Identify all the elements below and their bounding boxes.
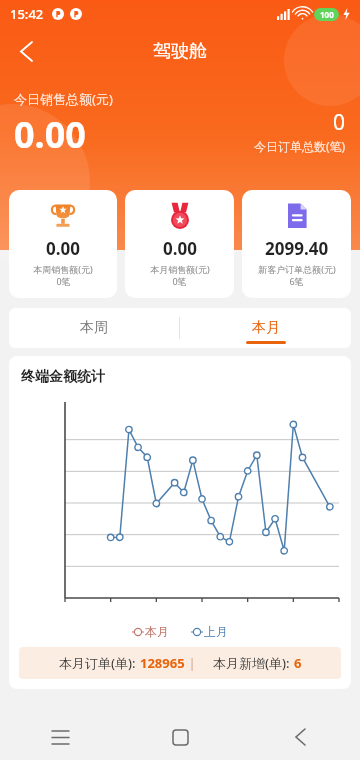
staticText: 本月订单(单): <box>59 654 140 672</box>
staticText: 0 <box>333 108 346 137</box>
staticText: 0笔 <box>56 275 71 287</box>
button[interactable]: 本周 <box>9 308 179 348</box>
button[interactable]: 本月 <box>180 308 351 348</box>
staticText: 0.00 <box>46 237 80 260</box>
staticText: 新客户订单总额(元) <box>258 263 336 275</box>
staticText: 6 <box>294 654 302 672</box>
staticText: 今日订单总数(笔) <box>254 138 346 154</box>
staticText: 终端金额统计 <box>21 368 105 386</box>
staticText: 本月新增(单): <box>213 654 294 672</box>
button[interactable]: Back <box>240 714 360 760</box>
button[interactable]: Recent apps <box>0 714 120 760</box>
staticText: 今日销售总额(元) <box>14 90 113 108</box>
button[interactable]: 0.00 <box>125 190 234 298</box>
staticText: 0笔 <box>172 275 187 287</box>
staticText: 本月销售额(元) <box>150 263 210 275</box>
staticText: 100 <box>320 9 334 20</box>
staticText: 128965 <box>140 654 185 672</box>
staticText: | <box>185 654 199 672</box>
staticText: 驾驶舱 <box>153 40 207 63</box>
staticText: 本周 <box>80 319 108 337</box>
staticText: 本月 <box>252 319 280 337</box>
staticText: 0.00 <box>163 237 197 260</box>
button[interactable]: Home <box>120 714 240 760</box>
staticText: 本周销售额(元) <box>33 263 93 275</box>
staticText: 上月 <box>204 624 228 639</box>
staticText: 本月 <box>145 624 169 639</box>
staticText: 0.00 <box>14 110 86 159</box>
button[interactable]: Back <box>4 29 48 73</box>
button[interactable]: 0.00 <box>9 190 117 298</box>
button[interactable]: 2099.40 <box>242 190 351 298</box>
staticText: 15:42 <box>10 5 44 23</box>
staticText: 6笔 <box>289 275 304 287</box>
staticText: 2099.40 <box>265 237 329 260</box>
